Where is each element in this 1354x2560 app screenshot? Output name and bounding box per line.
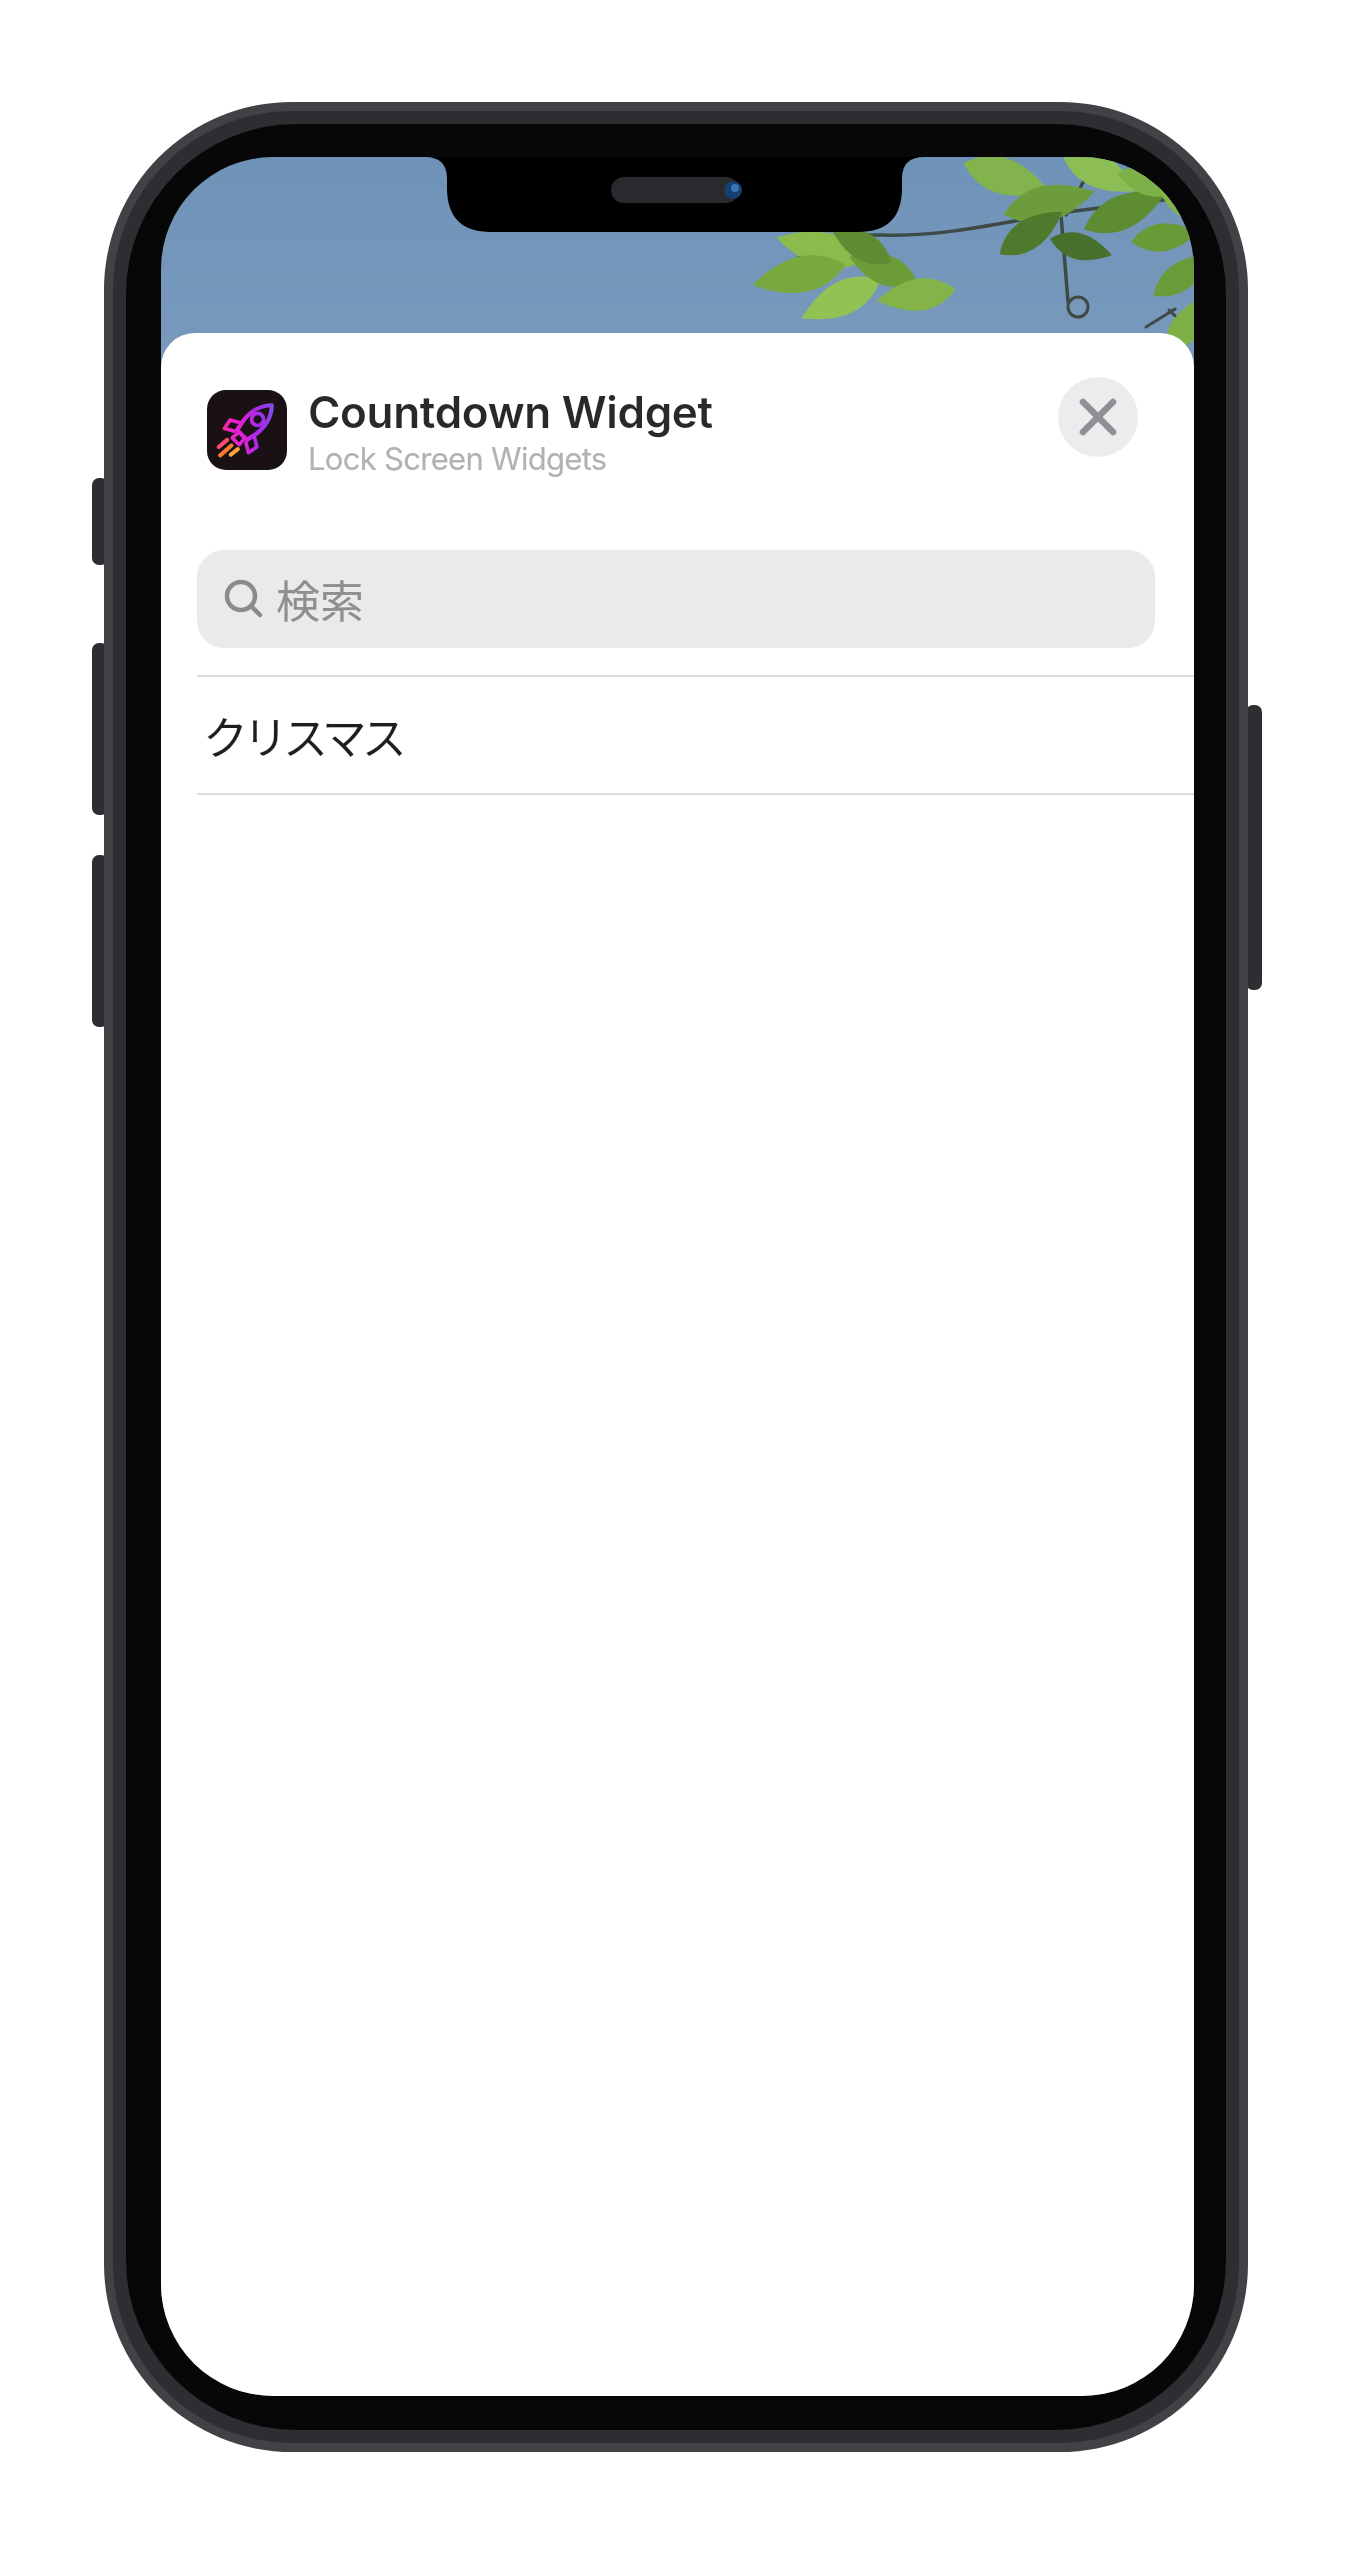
button[interactable]: クリスマス — [161, 677, 1194, 793]
button[interactable]: 検索 — [197, 550, 1155, 648]
staticText: Countdown Widget — [308, 385, 713, 438]
staticText: クリスマス — [203, 703, 402, 768]
button[interactable] — [1058, 377, 1138, 457]
staticText: 検索 — [276, 567, 364, 631]
staticText: Lock Screen Widgets — [308, 440, 607, 478]
